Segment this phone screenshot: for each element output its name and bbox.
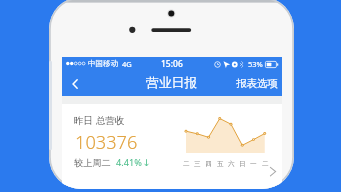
staticText: 五 — [217, 160, 224, 168]
staticText: 四 — [205, 160, 212, 168]
staticText: 二 — [183, 160, 190, 168]
staticText: 报表选项 — [236, 77, 278, 90]
button[interactable]: 报表选项 — [227, 70, 282, 96]
button[interactable]: Details — [265, 162, 279, 176]
staticText: 六 — [228, 160, 235, 168]
button[interactable]: Back — [62, 71, 88, 96]
staticText: 较上周二 — [74, 157, 111, 169]
staticText: 日 — [239, 160, 246, 168]
staticText: 昨日 总营收 — [74, 114, 125, 127]
staticText: 一 — [250, 160, 257, 168]
staticText: 三 — [194, 160, 201, 168]
staticText: 4G — [122, 59, 132, 69]
staticText: 营业日报 — [146, 75, 198, 91]
staticText: 53% — [248, 59, 263, 69]
staticText: 15:06 — [161, 58, 183, 70]
staticText: 中国移动 — [88, 59, 118, 68]
staticText: 103376 — [75, 130, 138, 155]
button[interactable]: 昨日 总营收 — [62, 104, 282, 189]
staticText: 4.41% — [116, 156, 142, 169]
staticText: 二 — [262, 160, 269, 168]
